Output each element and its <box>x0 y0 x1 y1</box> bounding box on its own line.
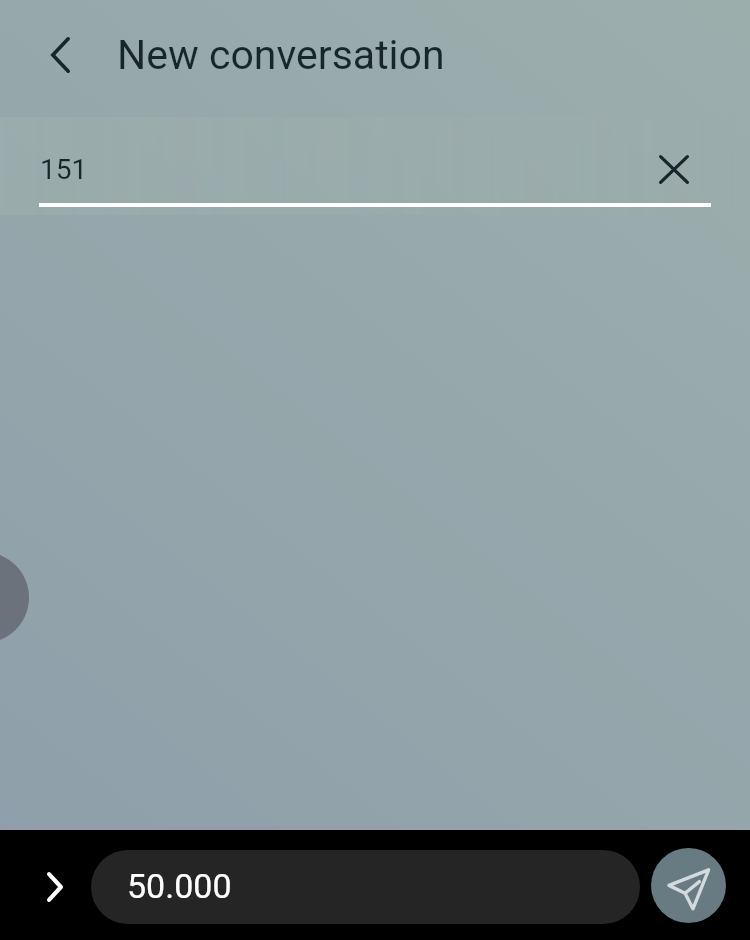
button[interactable]: 50.000 <box>91 850 640 924</box>
button[interactable]: 151 <box>0 117 646 215</box>
staticText: New conversation <box>117 31 445 79</box>
button[interactable]: Send <box>651 848 726 923</box>
staticText: 151 <box>40 153 88 186</box>
button[interactable]: Clear <box>646 141 702 197</box>
button[interactable]: Back <box>32 27 88 83</box>
button[interactable]: Expand options <box>29 861 81 913</box>
staticText: 50.000 <box>127 866 232 906</box>
